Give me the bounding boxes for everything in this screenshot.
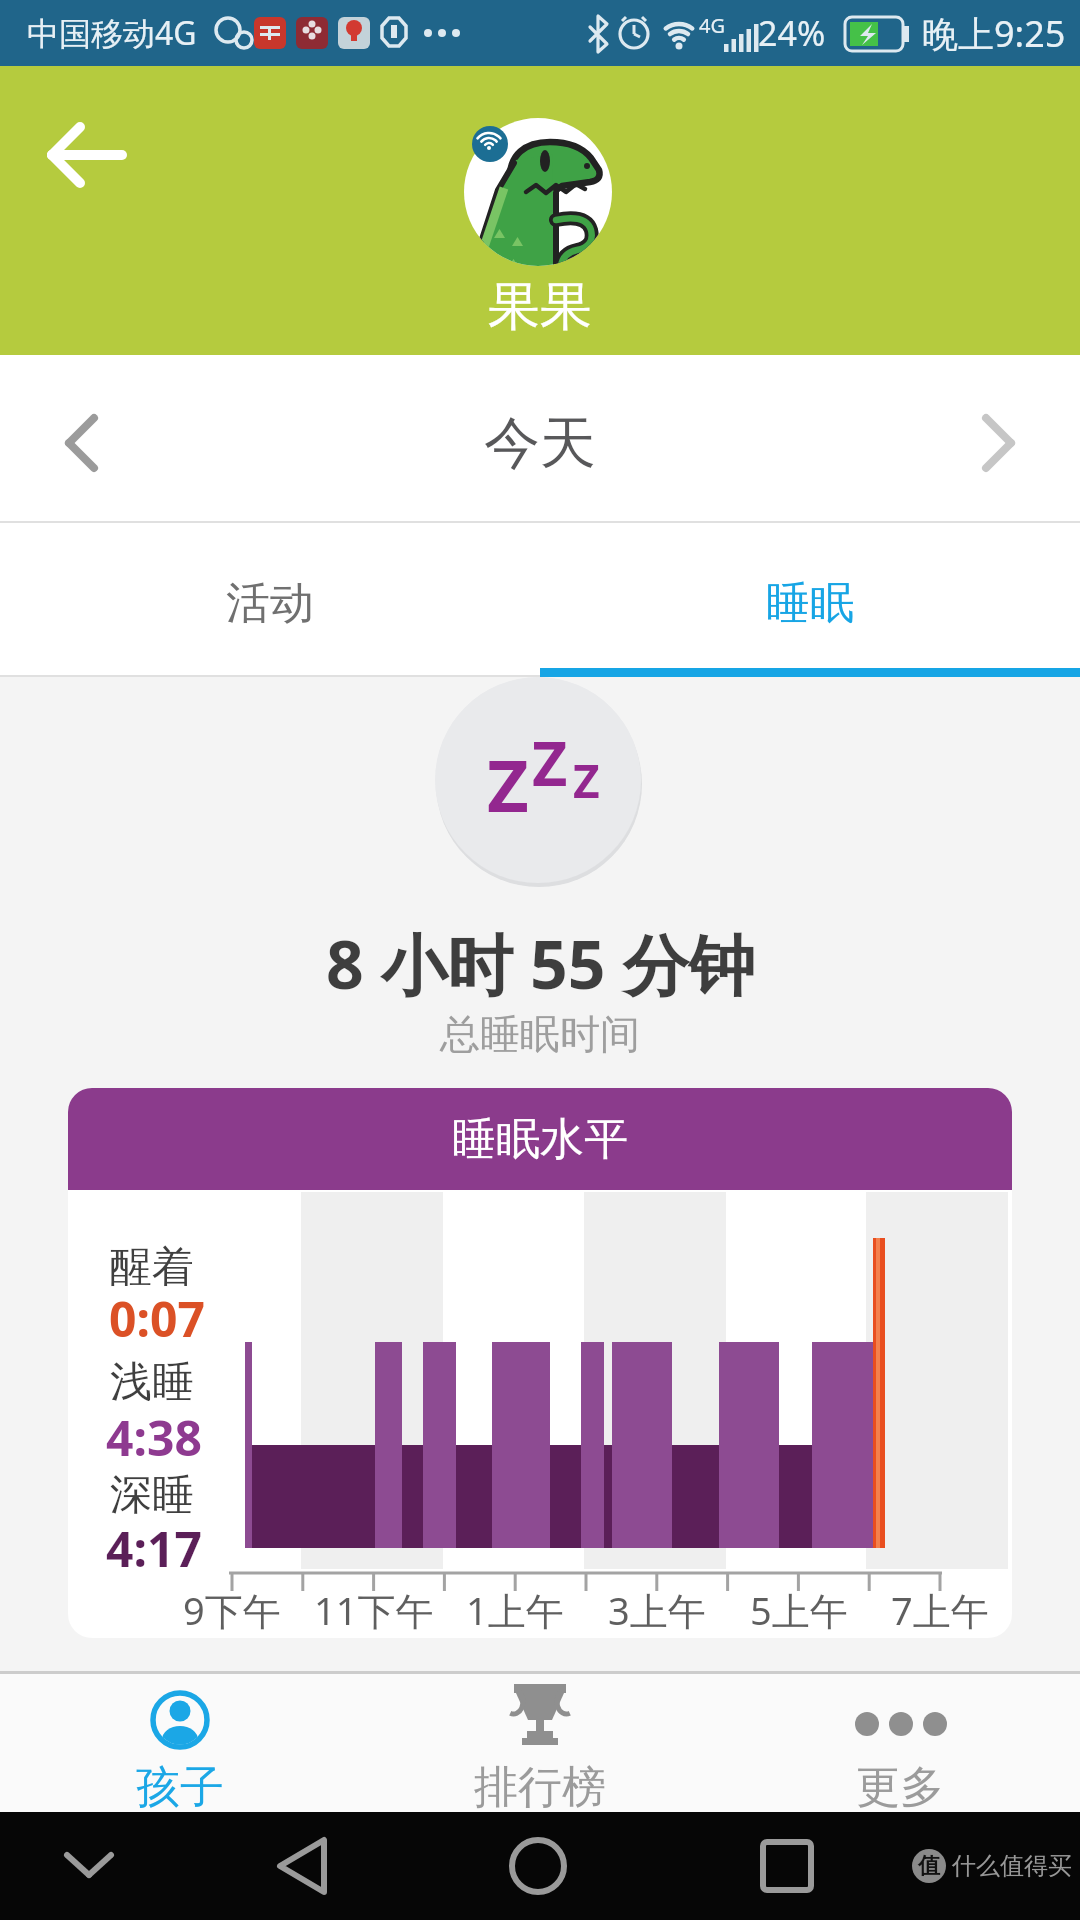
button[interactable]: 活动 — [0, 526, 540, 680]
staticText: 深睡 — [110, 1469, 194, 1522]
staticText: 11下午 — [314, 1584, 434, 1636]
staticText: 3上午 — [608, 1584, 706, 1636]
staticText: 值 — [918, 1852, 940, 1880]
staticText: 什么值得买 — [952, 1851, 1072, 1881]
staticText: 排行榜 — [474, 1760, 606, 1815]
staticText: 0:07 — [109, 1286, 205, 1351]
staticText: Z — [487, 735, 529, 833]
staticText: 晚上9:25 — [922, 9, 1066, 58]
staticText: 浅睡 — [110, 1356, 194, 1409]
staticText: 更多 — [856, 1760, 944, 1815]
staticText: 4G — [699, 12, 725, 39]
staticText: 睡眠 — [766, 576, 854, 631]
staticText: 1上午 — [466, 1584, 564, 1636]
button[interactable] — [958, 403, 1038, 483]
staticText: 睡眠水平 — [452, 1112, 628, 1167]
button[interactable]: 排行榜 — [360, 1674, 720, 1812]
button[interactable] — [464, 118, 612, 266]
staticText: Z — [573, 749, 600, 812]
button[interactable] — [260, 1824, 340, 1904]
button[interactable] — [50, 1824, 130, 1904]
button[interactable] — [723, 1824, 803, 1904]
staticText: 醒着 — [110, 1241, 194, 1294]
staticText: 8 小时 55 分钟 — [326, 918, 755, 1008]
staticText: Z — [532, 721, 568, 804]
staticText: 总睡眠时间 — [440, 1009, 640, 1059]
staticText: 4:17 — [106, 1516, 202, 1581]
button[interactable] — [498, 1824, 578, 1904]
staticText: 活动 — [226, 576, 314, 631]
staticText: 今天 — [484, 408, 596, 479]
staticText: 9下午 — [183, 1584, 281, 1636]
staticText: 5上午 — [750, 1584, 848, 1636]
staticText: 24% — [758, 10, 826, 56]
staticText: 果果 — [488, 274, 592, 340]
staticText: 中国移动4G — [27, 11, 197, 55]
staticText: 孩子 — [136, 1760, 224, 1815]
button[interactable] — [42, 403, 122, 483]
button[interactable]: 更多 — [720, 1674, 1080, 1812]
button[interactable] — [30, 96, 150, 216]
staticText: 4:38 — [106, 1405, 202, 1470]
staticText: 7上午 — [891, 1584, 989, 1636]
button[interactable]: 睡眠 — [540, 526, 1080, 680]
button[interactable]: 孩子 — [0, 1674, 360, 1812]
